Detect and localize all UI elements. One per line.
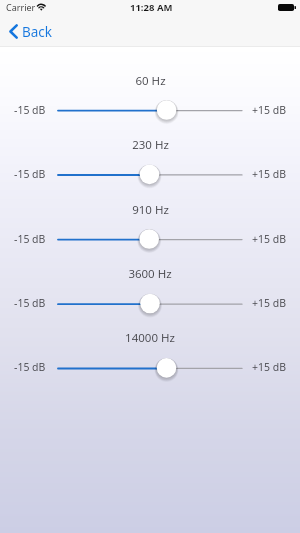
staticText: -15 dB <box>14 167 46 181</box>
button[interactable]: Back <box>0 16 59 47</box>
staticText: -15 dB <box>14 296 46 310</box>
button[interactable]: 3600 Hz gain slider <box>46 291 254 317</box>
staticText: +15 dB <box>252 167 287 181</box>
staticText: 14000 Hz <box>125 330 175 346</box>
staticText: +15 dB <box>252 103 287 117</box>
staticText: 3600 Hz <box>128 266 172 282</box>
staticText: +15 dB <box>252 360 287 374</box>
staticText: +15 dB <box>252 232 287 246</box>
staticText: -15 dB <box>14 360 46 374</box>
staticText: Back <box>22 23 53 41</box>
staticText: 230 Hz <box>132 137 169 153</box>
button[interactable]: 14000 Hz gain slider <box>46 355 254 381</box>
staticText: -15 dB <box>14 103 46 117</box>
button[interactable]: 230 Hz gain slider <box>46 162 254 188</box>
button[interactable]: 60 Hz gain slider <box>46 98 254 124</box>
staticText: 60 Hz <box>135 73 166 89</box>
staticText: Carrier <box>6 1 36 13</box>
staticText: +15 dB <box>252 296 287 310</box>
staticText: -15 dB <box>14 232 46 246</box>
staticText: 910 Hz <box>132 202 169 218</box>
staticText: 11:28 AM <box>130 1 173 14</box>
button[interactable]: 910 Hz gain slider <box>46 227 254 253</box>
